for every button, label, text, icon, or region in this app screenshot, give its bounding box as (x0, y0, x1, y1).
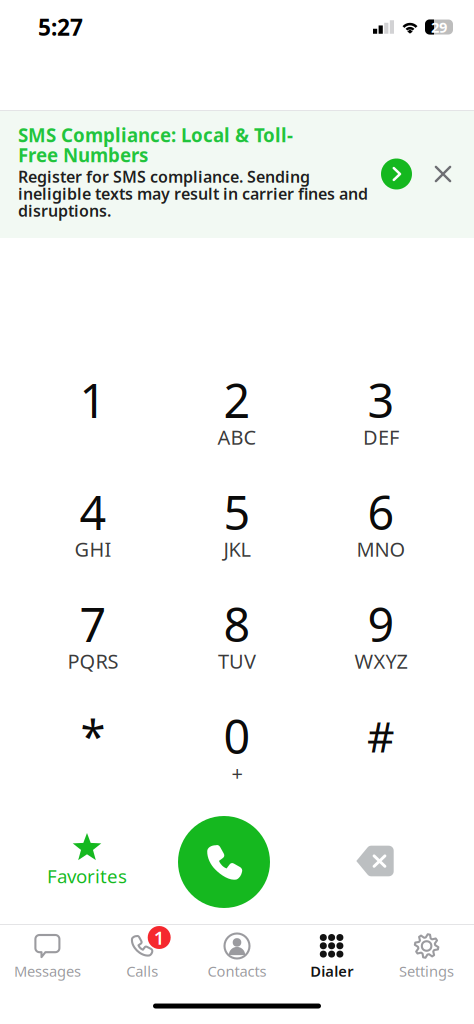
staticText: JKL (223, 536, 250, 562)
button[interactable]: Delete (0, 820, 474, 924)
staticText: 1 (154, 925, 165, 950)
button[interactable]: 9 (321, 596, 441, 708)
staticText: 2 (223, 369, 250, 431)
staticText: Favorites (47, 864, 127, 888)
staticText: Settings (399, 961, 454, 981)
button[interactable]: Open SMS compliance details (0, 111, 474, 238)
staticText: 4 (79, 481, 106, 543)
staticText: DEF (363, 424, 399, 450)
staticText: GHI (74, 536, 111, 562)
staticText: SMS Compliance: Local & Toll- (18, 123, 293, 147)
staticText: 9 (367, 593, 394, 655)
staticText: Dialer (310, 961, 353, 981)
staticText: Register for SMS compliance. Sending (18, 166, 310, 187)
button[interactable]: 1 (95, 925, 190, 987)
staticText: 6 (367, 481, 394, 543)
button[interactable]: Dialer (284, 925, 379, 987)
staticText: 5:27 (38, 12, 83, 42)
button[interactable]: Call (0, 820, 474, 924)
staticText: 1 (79, 369, 106, 431)
button[interactable]: 3 (321, 372, 441, 484)
staticText: MNO (356, 536, 405, 562)
staticText: TUV (218, 648, 256, 674)
button[interactable]: Favorites (0, 820, 474, 924)
button[interactable]: 4 (33, 484, 153, 596)
staticText: 5 (223, 481, 250, 543)
button[interactable]: * (33, 708, 153, 820)
button[interactable]: 6 (321, 484, 441, 596)
staticText: # (367, 708, 395, 764)
staticText: 3 (367, 369, 394, 431)
button[interactable]: Dismiss banner (0, 111, 474, 238)
button[interactable]: 0 (177, 708, 297, 820)
staticText: Contacts (207, 961, 266, 981)
button[interactable]: Contacts (190, 925, 284, 987)
staticText: + (231, 760, 242, 786)
button[interactable]: 1 (33, 372, 153, 484)
staticText: 0 (223, 705, 250, 767)
button[interactable]: 2 (177, 372, 297, 484)
button[interactable]: 8 (177, 596, 297, 708)
button[interactable]: 7 (33, 596, 153, 708)
button[interactable]: # (321, 708, 441, 820)
staticText: WXYZ (354, 648, 407, 674)
staticText: ABC (217, 424, 256, 450)
staticText: PQRS (67, 648, 118, 674)
staticText: 29 (431, 17, 447, 37)
staticText: * (80, 706, 105, 766)
staticText: 8 (223, 593, 250, 655)
staticText: Calls (126, 961, 158, 981)
staticText: ineligible texts may result in carrier f… (18, 183, 368, 204)
button[interactable]: 5 (177, 484, 297, 596)
staticText: Messages (14, 961, 81, 981)
button[interactable]: Settings (379, 925, 474, 987)
staticText: 7 (79, 593, 106, 655)
staticText: disruptions. (18, 200, 111, 221)
staticText: Free Numbers (18, 143, 148, 167)
button[interactable]: Messages (0, 925, 95, 987)
